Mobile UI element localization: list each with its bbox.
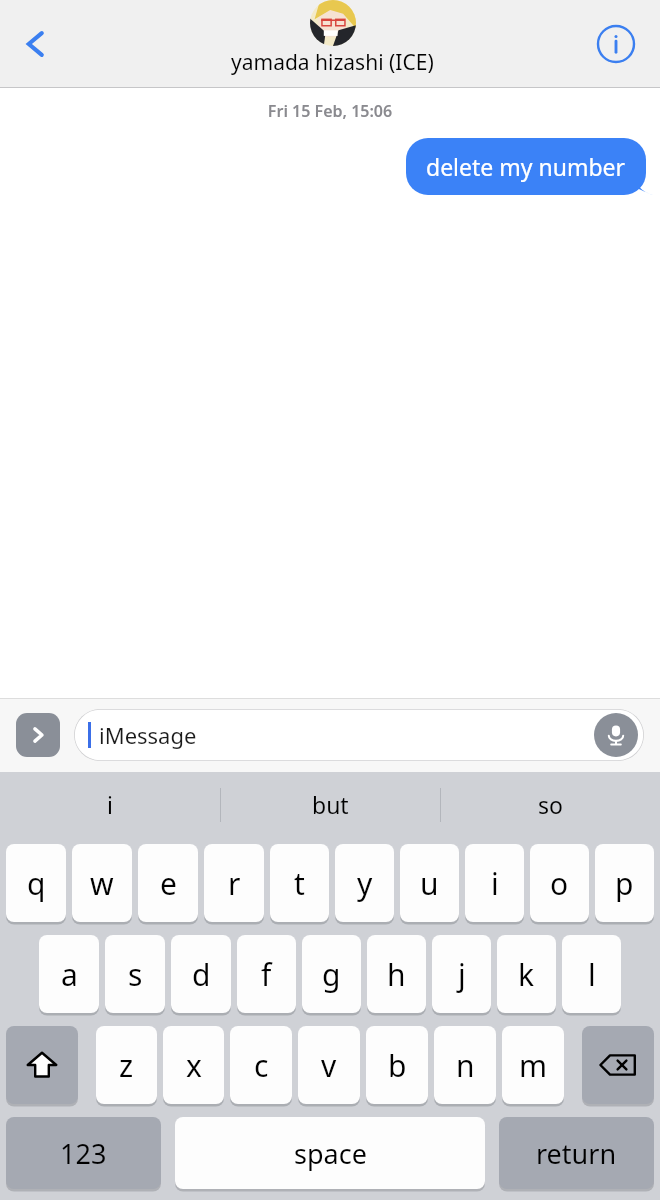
staticText: s	[128, 954, 143, 995]
button[interactable]: i	[465, 844, 524, 922]
button[interactable]: x	[163, 1026, 224, 1104]
button[interactable]: a	[39, 935, 99, 1013]
staticText: b	[388, 1045, 407, 1086]
staticText: so	[538, 789, 563, 820]
staticText: w	[90, 863, 114, 904]
staticText: g	[322, 954, 341, 995]
staticText: 123	[60, 1135, 107, 1172]
button[interactable]: More apps	[16, 713, 60, 757]
button[interactable]: h	[367, 935, 426, 1013]
staticText: u	[420, 863, 439, 904]
staticText: q	[27, 863, 46, 904]
staticText: but	[312, 789, 349, 820]
button[interactable]: j	[432, 935, 491, 1013]
staticText: v	[321, 1045, 337, 1086]
button[interactable]: Shift	[6, 1026, 78, 1104]
staticText: return	[536, 1135, 617, 1172]
staticText: n	[456, 1045, 475, 1086]
button[interactable]: m	[502, 1026, 564, 1104]
button[interactable]: r	[204, 844, 264, 922]
staticText: k	[518, 954, 535, 995]
staticText: j	[458, 954, 466, 995]
staticText: r	[228, 863, 241, 904]
button[interactable]: b	[366, 1026, 428, 1104]
button[interactable]: c	[230, 1026, 292, 1104]
button[interactable]: v	[298, 1026, 360, 1104]
staticText: Fri 15 Feb, 15:06	[0, 100, 660, 122]
button[interactable]: e	[138, 844, 198, 922]
staticText: h	[387, 954, 406, 995]
button[interactable]: return	[499, 1117, 654, 1189]
button[interactable]: Back	[4, 12, 68, 76]
button[interactable]: delete my number	[406, 138, 654, 195]
button[interactable]: w	[72, 844, 132, 922]
button[interactable]: t	[270, 844, 329, 922]
staticText: p	[615, 863, 634, 904]
staticText: y	[357, 863, 373, 904]
button[interactable]: so	[441, 772, 660, 837]
staticText: i	[491, 863, 499, 904]
button[interactable]: s	[105, 935, 165, 1013]
staticText: t	[294, 863, 305, 904]
staticText: z	[119, 1045, 134, 1086]
staticText: i	[107, 789, 113, 820]
button[interactable]: z	[96, 1026, 157, 1104]
button[interactable]: n	[434, 1026, 496, 1104]
button[interactable]: yamada hizashi (ICE)	[231, 0, 434, 77]
staticText: delete my number	[426, 151, 626, 182]
staticText: x	[186, 1045, 202, 1086]
staticText: m	[519, 1045, 548, 1086]
staticText: o	[550, 863, 569, 904]
staticText: yamada hizashi (ICE)	[231, 48, 434, 77]
button[interactable]: l	[562, 935, 621, 1013]
button[interactable]: but	[221, 772, 440, 837]
staticText: f	[261, 954, 272, 995]
button[interactable]: f	[237, 935, 296, 1013]
staticText: d	[192, 954, 211, 995]
button[interactable]: Backspace	[582, 1026, 654, 1104]
button[interactable]: d	[171, 935, 231, 1013]
staticText: space	[294, 1135, 367, 1172]
button[interactable]: y	[335, 844, 394, 922]
staticText: a	[61, 954, 78, 995]
button[interactable]: q	[6, 844, 66, 922]
button[interactable]: p	[595, 844, 654, 922]
button[interactable]: space	[175, 1117, 485, 1189]
button[interactable]: k	[497, 935, 556, 1013]
staticText: e	[160, 863, 177, 904]
button[interactable]: o	[530, 844, 589, 922]
button[interactable]: i	[0, 772, 220, 837]
button[interactable]: Details	[590, 18, 642, 70]
button[interactable]: 123	[6, 1117, 161, 1189]
staticText: iMessage	[99, 720, 197, 750]
staticText: l	[588, 954, 596, 995]
button[interactable]: Dictate	[594, 713, 638, 757]
button[interactable]: g	[302, 935, 361, 1013]
button[interactable]: u	[400, 844, 459, 922]
button[interactable]: iMessage	[74, 709, 644, 761]
staticText: c	[254, 1045, 269, 1086]
